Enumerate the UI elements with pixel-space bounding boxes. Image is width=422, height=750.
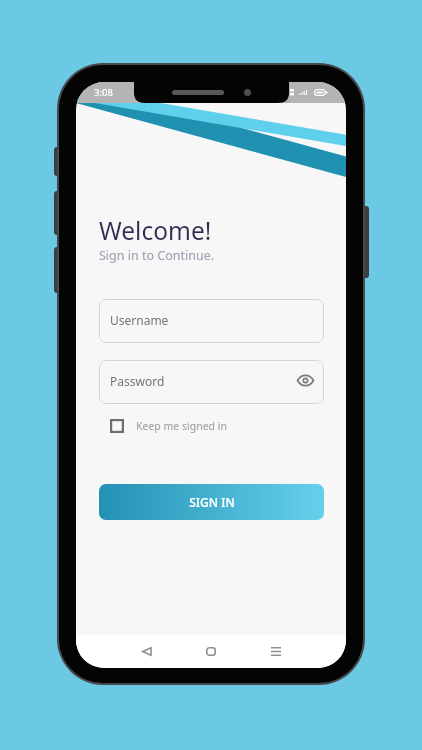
staticText: Username [110, 312, 169, 328]
button[interactable]: SIGN IN [99, 484, 324, 520]
staticText: Welcome! [99, 214, 212, 247]
staticText: SIGN IN [189, 494, 235, 510]
button[interactable]: Keep me signed in [99, 416, 227, 436]
button[interactable]: Password [99, 360, 324, 404]
button[interactable]: Home [178, 635, 243, 668]
staticText: 3:08 [94, 86, 113, 99]
staticText: Sign in to Continue. [99, 247, 215, 264]
staticText: Keep me signed in [136, 419, 227, 433]
staticText: Password [110, 373, 165, 389]
button[interactable]: Back [114, 635, 178, 668]
button[interactable]: Show password [293, 368, 317, 392]
button[interactable]: Recents [243, 635, 308, 668]
button[interactable]: Username [99, 299, 324, 343]
